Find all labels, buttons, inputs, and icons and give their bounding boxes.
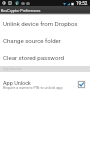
staticText: BoxCryptor Preferences	[1, 9, 41, 13]
button[interactable]: Clear stored password	[0, 49, 90, 66]
staticText: App Security	[3, 67, 22, 71]
staticText: Change source folder	[3, 37, 61, 44]
staticText: Unlink device from Dropbox	[3, 20, 78, 27]
button[interactable]: Unlink device from Dropbox	[0, 15, 90, 32]
staticText: Clear stored password	[3, 54, 64, 61]
staticText: App Unlock	[3, 80, 31, 86]
button[interactable]: App Unlock checkbox	[77, 80, 86, 89]
staticText: Require a numeric PIN to unlock app	[3, 86, 63, 90]
staticText: 19:52	[76, 1, 88, 6]
button[interactable]: Change source folder	[0, 32, 90, 49]
button[interactable]: App Unlock	[0, 75, 90, 94]
